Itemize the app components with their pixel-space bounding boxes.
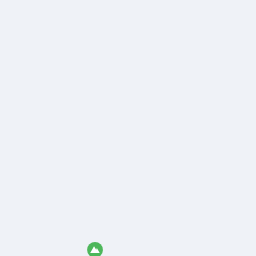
button[interactable]: Open app [87,242,103,256]
